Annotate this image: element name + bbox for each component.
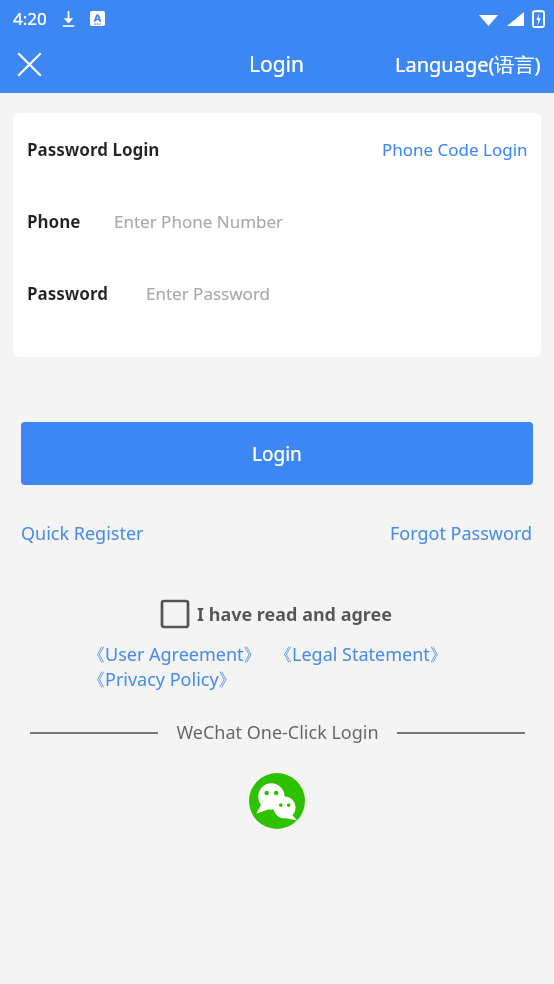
button[interactable]: WeChat One-Click Login	[249, 773, 305, 829]
staticText: Enter Phone Number	[114, 210, 284, 233]
staticText: 《Privacy Policy》	[87, 667, 237, 692]
button[interactable]: Forgot Password	[382, 517, 554, 550]
staticText: 《Legal Statement》	[274, 642, 448, 667]
button[interactable]: Password Login	[13, 132, 168, 167]
staticText: WeChat One-Click Login	[176, 720, 379, 745]
staticText: Phone	[27, 210, 81, 233]
button[interactable]: Phone Code Login	[374, 132, 541, 167]
button[interactable]: 《Legal Statement》	[274, 642, 448, 667]
staticText: Quick Register	[21, 521, 144, 546]
button[interactable]: I have read and agree	[156, 598, 399, 630]
staticText: 4:20	[13, 7, 47, 30]
staticText: Login	[249, 50, 305, 79]
button[interactable]: Phone	[13, 185, 541, 257]
button[interactable]: 《Privacy Policy》	[87, 667, 237, 692]
staticText: 《User Agreement》	[87, 642, 262, 667]
staticText: Password	[27, 282, 108, 305]
button[interactable]: Close	[0, 36, 58, 93]
staticText: Phone Code Login	[382, 138, 528, 161]
button[interactable]: Quick Register	[0, 517, 152, 550]
button[interactable]: Login	[21, 422, 533, 485]
staticText: Password Login	[27, 138, 160, 161]
staticText: Enter Password	[146, 282, 271, 305]
button[interactable]: 《User Agreement》	[87, 642, 262, 667]
button[interactable]: Language(语言)	[382, 41, 554, 88]
staticText: Forgot Password	[390, 521, 533, 546]
button[interactable]: Password	[13, 257, 541, 329]
staticText: Login	[252, 441, 302, 467]
staticText: I have read and agree	[197, 602, 393, 627]
staticText: Language(语言)	[395, 51, 541, 78]
